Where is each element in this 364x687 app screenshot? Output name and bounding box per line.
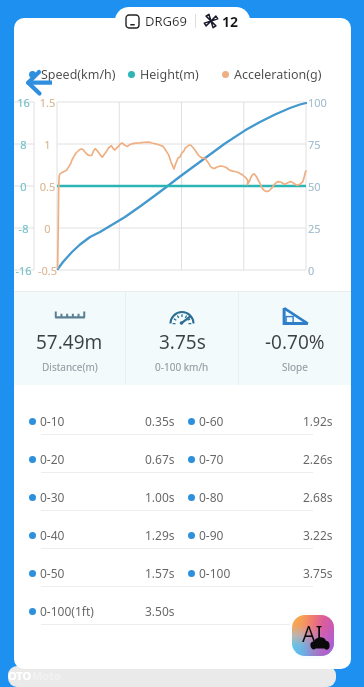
staticText: 2.68s (303, 489, 333, 505)
staticText: Acceleration(g) (234, 66, 322, 83)
button[interactable]: DRG69 (115, 7, 250, 35)
button[interactable]: 0-100 (188, 554, 333, 592)
button[interactable]: AI assistant (289, 612, 337, 659)
staticText: 0-10 (40, 413, 65, 429)
staticText: AI (302, 620, 323, 649)
staticText: 3.75s (303, 565, 333, 581)
staticText: 12 (222, 12, 239, 31)
staticText: 100 (308, 95, 342, 110)
staticText: 57.49m (36, 329, 103, 355)
staticText: 0-80 (199, 489, 224, 505)
staticText: 0-100 (199, 565, 231, 581)
staticText: 8 (14, 137, 43, 152)
staticText: DRG69 (145, 12, 187, 30)
button[interactable]: 0-30 (29, 478, 175, 516)
staticText: -0.70% (265, 329, 325, 355)
staticText: 0-70 (199, 451, 224, 467)
staticText: 0.35s (145, 413, 175, 429)
staticText: OTO (8, 668, 32, 683)
button[interactable]: 3.75s (126, 292, 238, 385)
staticText: 1.5 (28, 95, 67, 110)
button[interactable]: 57.49m (14, 292, 125, 385)
staticText: 0-60 (199, 413, 224, 429)
staticText: 50 (308, 179, 342, 194)
staticText: 25 (308, 221, 342, 236)
staticText: 0 (14, 179, 43, 194)
button[interactable]: 0-70 (188, 440, 333, 478)
button[interactable]: 0-10 (29, 402, 175, 440)
button[interactable]: 0-60 (188, 402, 333, 440)
staticText: Height(m) (140, 66, 199, 83)
staticText: 0-20 (40, 451, 65, 467)
staticText: 2.26s (303, 451, 333, 467)
staticText: 0 (308, 263, 342, 278)
button[interactable]: 0-20 (29, 440, 175, 478)
staticText: 0-40 (40, 527, 65, 543)
staticText: 3.75s (159, 329, 206, 355)
button[interactable]: 0-50 (29, 554, 175, 592)
staticText: -0.5 (28, 263, 67, 278)
staticText: 16 (14, 95, 43, 110)
staticText: 0.67s (145, 451, 175, 467)
staticText: 1.57s (145, 565, 175, 581)
staticText: Speed(km/h) (41, 66, 116, 83)
staticText: 0-100 km/h (155, 360, 209, 374)
staticText: 0-30 (40, 489, 65, 505)
staticText: 1.92s (303, 413, 333, 429)
button[interactable]: 0-80 (188, 478, 333, 516)
staticText: 0 (28, 221, 67, 236)
staticText: 1.29s (145, 527, 175, 543)
button[interactable]: Speed(km/h) (29, 66, 116, 83)
button[interactable]: 0-100(1ft) (29, 592, 175, 630)
staticText: -8 (14, 221, 43, 236)
button[interactable]: -0.70% (239, 292, 351, 385)
button[interactable]: Acceleration(g) (222, 66, 322, 83)
staticText: 1 (28, 137, 67, 152)
staticText: -16 (14, 263, 43, 278)
button[interactable]: Height(m) (128, 66, 199, 83)
staticText: 0.5 (28, 179, 67, 194)
staticText: Slope (282, 360, 308, 374)
staticText: 3.50s (145, 603, 175, 619)
staticText: Moto (32, 668, 61, 683)
button[interactable]: 0-90 (188, 516, 333, 554)
staticText: 0-100(1ft) (40, 603, 94, 619)
staticText: 3.22s (303, 527, 333, 543)
staticText: Distance(m) (42, 360, 98, 374)
staticText: 0-50 (40, 565, 65, 581)
staticText: 0-90 (199, 527, 224, 543)
staticText: 75 (308, 137, 342, 152)
button[interactable]: Back (18, 66, 60, 98)
staticText: 1.00s (145, 489, 175, 505)
button[interactable]: 0-40 (29, 516, 175, 554)
